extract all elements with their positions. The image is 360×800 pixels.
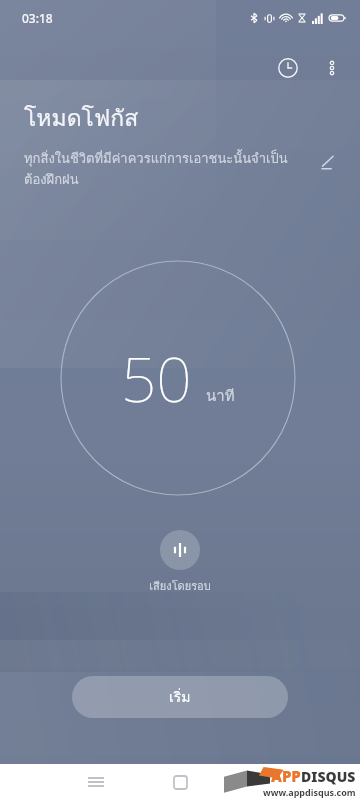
staticText: นาที xyxy=(206,384,235,408)
button[interactable]: History xyxy=(272,52,304,84)
staticText: 50 xyxy=(121,336,192,420)
staticText: www.appdisqus.com xyxy=(263,786,356,798)
staticText: 03:18 xyxy=(22,10,53,26)
staticText: ทุกสิ่งในชีวิตที่มีค่าควรแก่การเอาชนะนั้… xyxy=(24,148,288,190)
button[interactable]: Home xyxy=(162,764,198,800)
button[interactable]: More options xyxy=(316,52,348,84)
button[interactable]: ทุกสิ่งในชีวิตที่มีค่าควรแก่การเอาชนะนั้… xyxy=(24,148,300,190)
button[interactable]: 50 xyxy=(60,260,296,496)
staticText: โหมดโฟกัส xyxy=(24,100,139,137)
staticText: เริ่ม xyxy=(169,686,191,708)
button[interactable]: Recents xyxy=(78,764,114,800)
button[interactable]: เสียงโดยรอบ xyxy=(139,528,221,596)
button[interactable]: Back xyxy=(270,764,360,800)
staticText: เสียงโดยรอบ xyxy=(149,577,211,594)
button[interactable]: เริ่ม xyxy=(72,676,288,718)
staticText: DISQUS xyxy=(301,767,356,786)
button[interactable]: Edit xyxy=(312,146,344,178)
staticText: APP xyxy=(271,766,301,786)
